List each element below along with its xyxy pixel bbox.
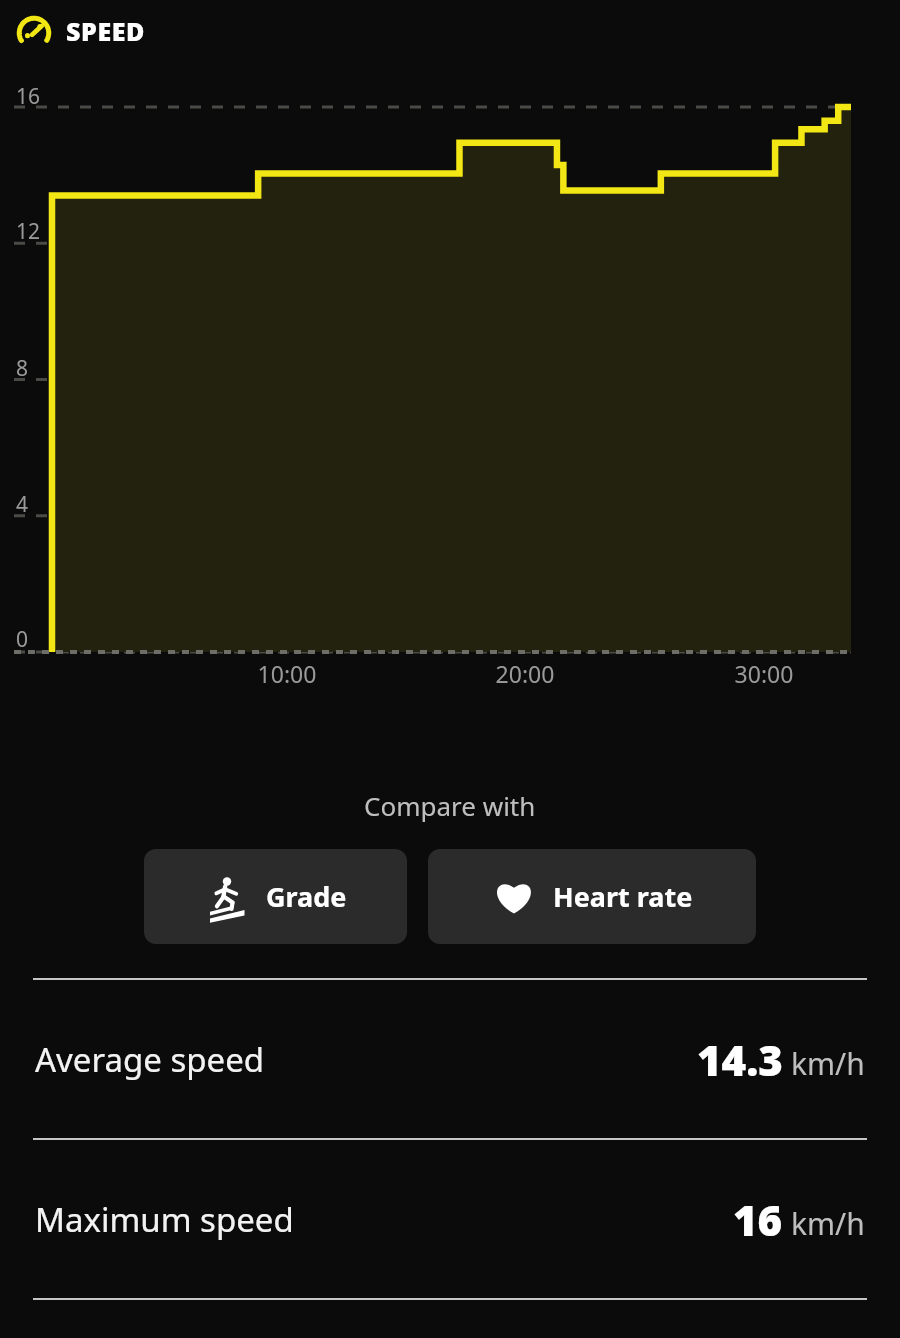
staticText: 14.3 [697,1031,783,1088]
staticText: 8 [16,354,29,383]
staticText: SPEED [66,14,146,48]
staticText: 12 [16,217,41,246]
staticText: 16 [733,1191,783,1248]
button[interactable]: Maximum speed [33,1140,867,1298]
staticText: Heart rate [553,878,693,915]
staticText: 20:00 [477,658,573,689]
staticText: Grade [266,878,347,915]
staticText: Maximum speed [35,1197,294,1242]
staticText: 0 [16,625,29,654]
button[interactable]: Heart rate [428,849,756,944]
staticText: 30:00 [716,658,812,689]
staticText: km/h [791,1043,865,1084]
staticText: km/h [791,1203,865,1244]
staticText: Compare with [364,788,536,823]
staticText: 16 [16,82,41,111]
staticText: Average speed [35,1037,265,1082]
button[interactable]: Grade [144,849,407,944]
staticText: 10:00 [239,658,335,689]
staticText: 4 [16,490,29,519]
button[interactable]: Average speed [33,980,867,1138]
